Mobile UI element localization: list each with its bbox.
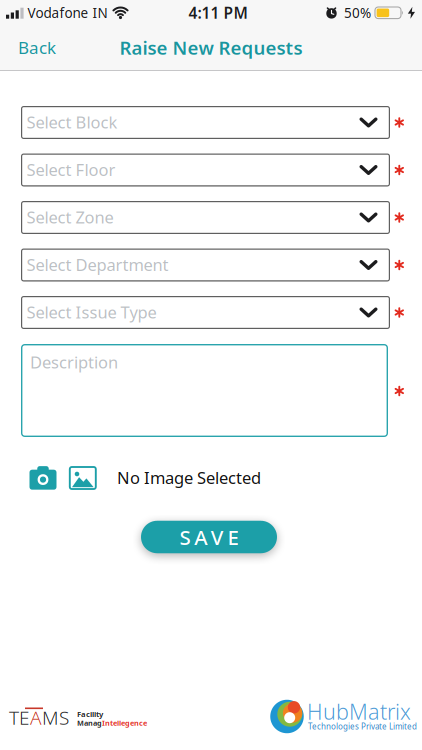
staticText: Vodafone IN	[27, 4, 107, 22]
button[interactable]: Select Floor	[21, 153, 390, 186]
button[interactable]: SAVE	[141, 521, 277, 553]
button[interactable]: Back	[18, 29, 98, 65]
staticText: 50%	[344, 4, 371, 22]
staticText: Technologies Private Limited	[308, 721, 417, 732]
staticText: Raise New Requests	[119, 35, 302, 60]
button[interactable]: Select Zone	[21, 201, 390, 234]
staticText: Back	[18, 36, 56, 59]
staticText: Intellegence	[102, 718, 147, 728]
staticText: Select Zone	[26, 206, 113, 228]
staticText: A	[30, 705, 42, 730]
button[interactable]: Select Department	[21, 248, 390, 281]
button[interactable]: Select Issue Type	[21, 296, 390, 329]
staticText: SAVE	[180, 523, 238, 551]
staticText: Description	[30, 351, 118, 373]
staticText: TE	[9, 705, 30, 730]
staticText: No Image Selected	[117, 466, 261, 488]
button[interactable]: Take Photo	[29, 466, 56, 490]
staticText: MS	[42, 705, 69, 730]
staticText: HubMatrix	[307, 697, 411, 726]
staticText: 4:11 PM	[188, 2, 247, 23]
button[interactable]: Select Block	[21, 106, 390, 139]
staticText: Select Block	[26, 111, 117, 133]
staticText: Select Floor	[26, 159, 115, 181]
staticText: Select Issue Type	[26, 301, 156, 323]
button[interactable]: Choose Image	[70, 467, 96, 489]
staticText: Select Department	[26, 254, 168, 276]
staticText: Facility	[77, 709, 103, 719]
staticText: Manag	[77, 718, 102, 728]
